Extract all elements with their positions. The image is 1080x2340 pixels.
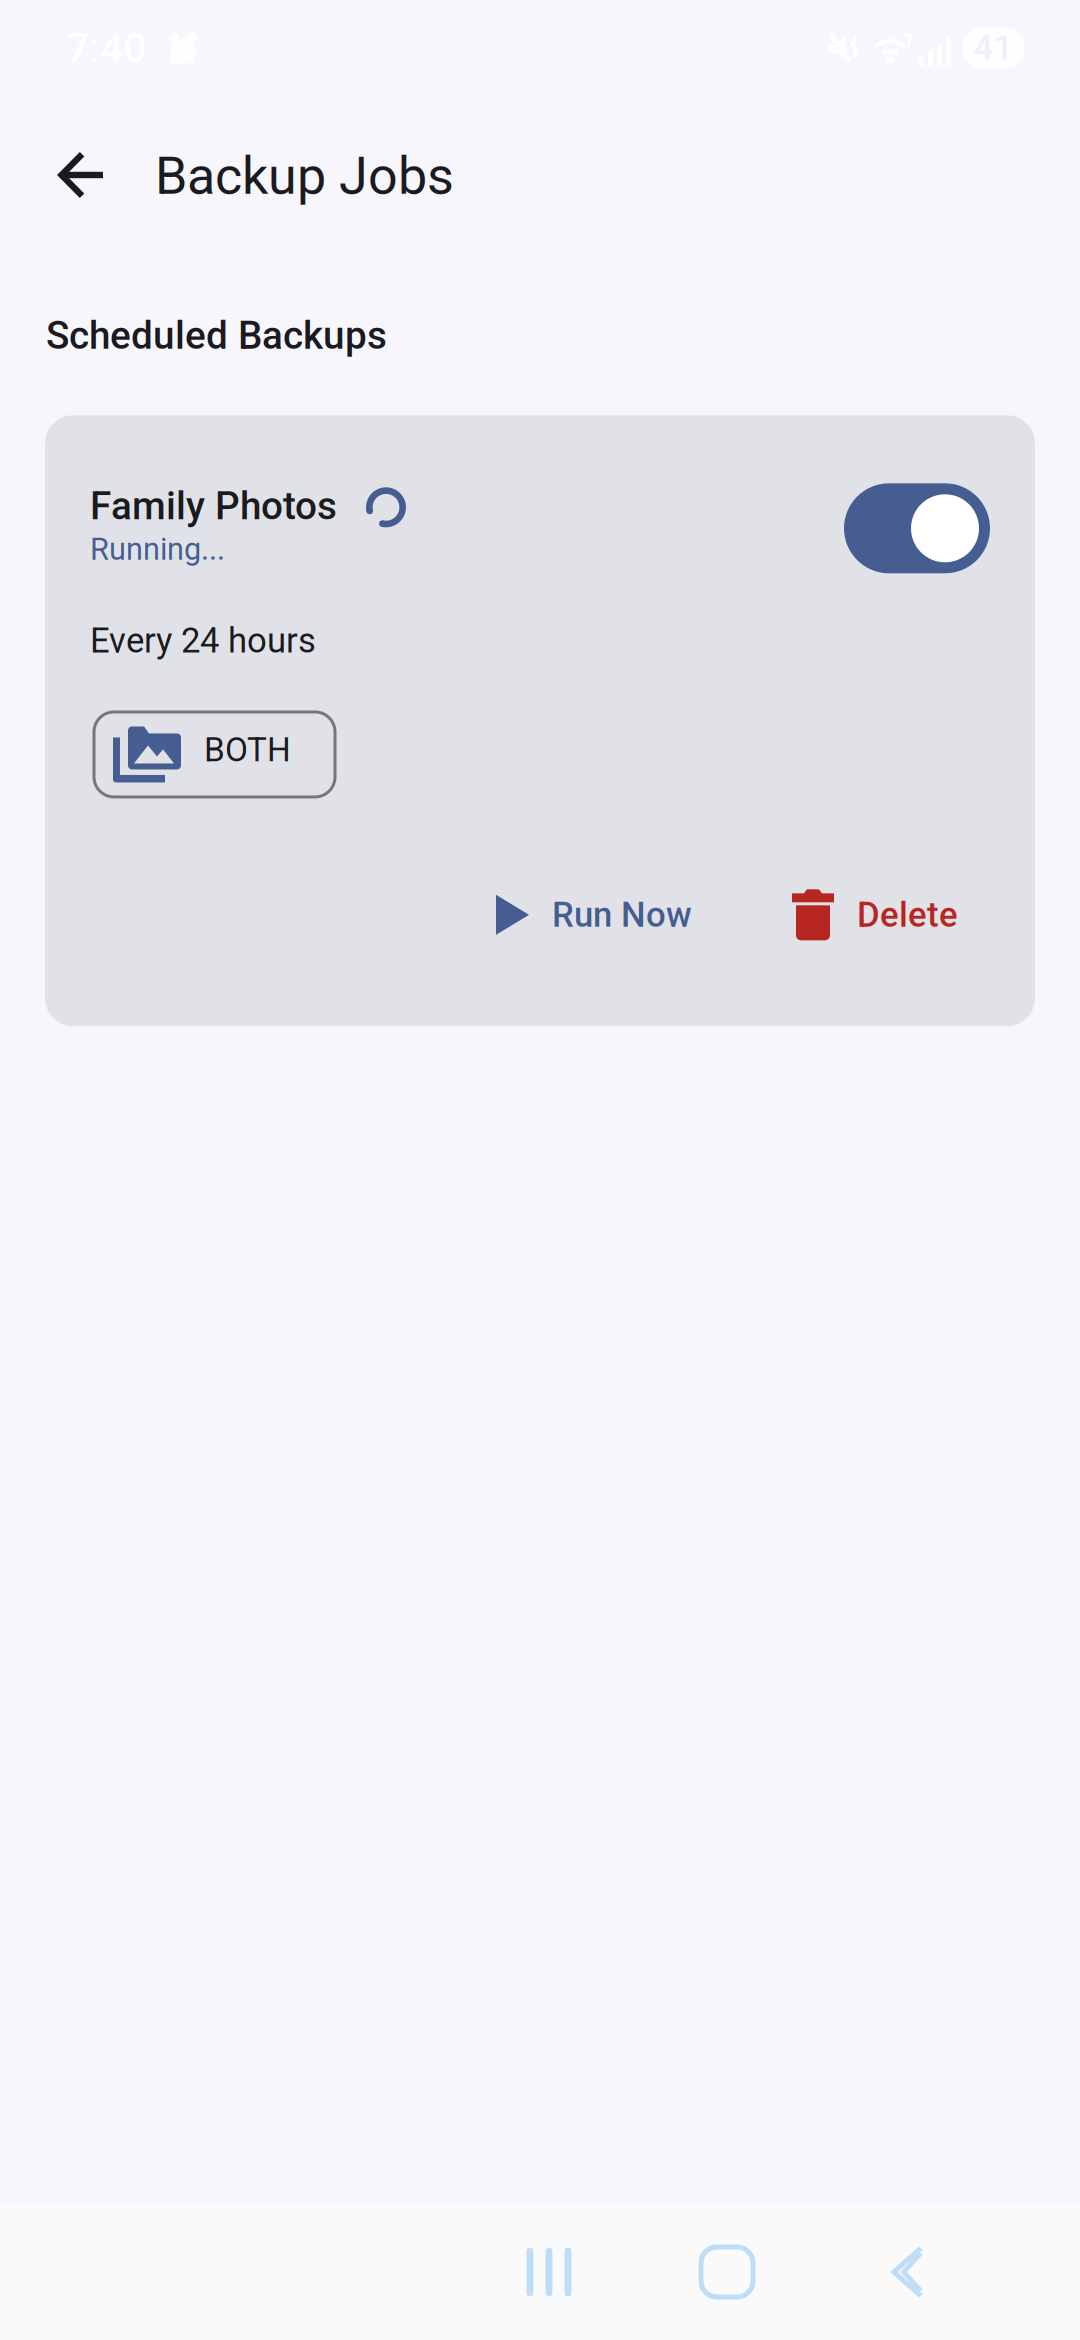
- staticText: Delete: [857, 894, 958, 935]
- staticText: Family Photos: [90, 483, 337, 529]
- staticText: 41: [973, 28, 1013, 68]
- button[interactable]: Back: [57, 123, 155, 229]
- button[interactable]: Recent apps: [460, 2209, 638, 2334]
- button[interactable]: Delete: [776, 875, 974, 954]
- button[interactable]: Back: [816, 2209, 994, 2334]
- button[interactable]: Home: [638, 2209, 816, 2334]
- staticText: Backup Jobs: [155, 145, 454, 206]
- staticText: Run Now: [552, 894, 692, 935]
- staticText: Running...: [90, 531, 225, 567]
- button[interactable]: Backup job enabled: [844, 483, 990, 573]
- staticText: Every 24 hours: [90, 620, 316, 661]
- staticText: 7:40: [66, 24, 146, 72]
- staticText: BOTH: [204, 730, 291, 769]
- button[interactable]: Run Now: [480, 880, 708, 949]
- button[interactable]: BOTH: [94, 712, 335, 797]
- staticText: Scheduled Backups: [46, 313, 387, 358]
